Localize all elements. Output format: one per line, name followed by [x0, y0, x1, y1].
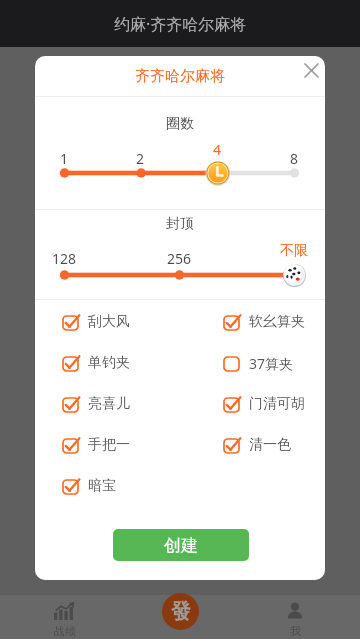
staticText: 约麻·齐齐哈尔麻将: [114, 13, 247, 35]
staticText: 亮喜儿: [88, 395, 130, 413]
staticText: 128: [52, 249, 77, 268]
button[interactable]: 清一色: [222, 430, 322, 460]
staticText: 刮大风: [88, 313, 130, 331]
staticText: 我: [290, 624, 301, 638]
staticText: 创建: [164, 535, 198, 556]
button[interactable]: 单钓夹: [61, 348, 211, 378]
staticText: 2: [136, 149, 145, 168]
staticText: 256: [167, 249, 192, 268]
staticText: 战绩: [54, 624, 76, 638]
staticText: 發: [171, 599, 191, 624]
staticText: 手把一: [88, 436, 130, 454]
staticText: 清一色: [249, 436, 291, 454]
staticText: 1: [60, 149, 69, 168]
staticText: 4: [213, 140, 222, 159]
button[interactable]: 37算夹: [222, 348, 322, 378]
button[interactable]: 手把一: [61, 430, 211, 460]
staticText: 门清可胡: [249, 395, 305, 413]
button[interactable]: 暗宝: [61, 471, 211, 501]
button[interactable]: 刮大风: [61, 307, 211, 337]
button[interactable]: 战绩: [37, 602, 93, 639]
staticText: 齐齐哈尔麻将: [135, 67, 225, 86]
staticText: 单钓夹: [88, 354, 130, 372]
staticText: 圈数: [166, 115, 194, 133]
staticText: 暗宝: [88, 477, 116, 495]
button[interactable]: 亮喜儿: [61, 389, 211, 419]
staticText: 8: [290, 149, 299, 168]
button[interactable]: 创建: [113, 529, 249, 561]
staticText: 37算夹: [249, 354, 294, 373]
button[interactable]: Close: [298, 57, 324, 83]
button[interactable]: 软幺算夹: [222, 307, 322, 337]
staticText: 不限: [280, 242, 308, 260]
button[interactable]: 发起游戏: [162, 593, 199, 630]
button[interactable]: 门清可胡: [222, 389, 322, 419]
button[interactable]: 我: [267, 602, 323, 639]
staticText: 封顶: [166, 215, 194, 233]
staticText: 软幺算夹: [249, 313, 305, 331]
